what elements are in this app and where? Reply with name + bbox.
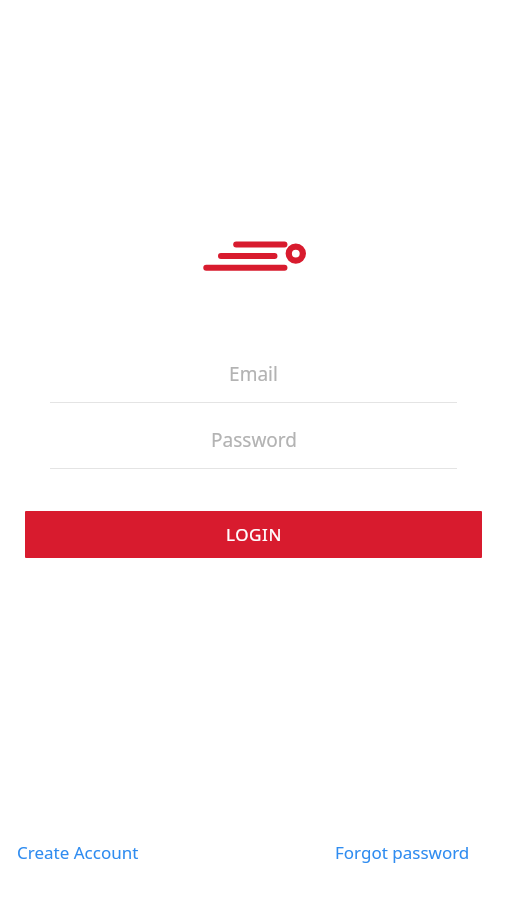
staticText: Email (229, 361, 278, 387)
staticText: Create Account (17, 841, 139, 864)
button[interactable]: Forgot password (332, 835, 473, 870)
button[interactable]: Email (50, 346, 457, 402)
staticText: Password (211, 427, 297, 453)
button[interactable]: LOGIN (25, 511, 482, 558)
button[interactable]: Create Account (14, 835, 142, 870)
staticText: LOGIN (226, 523, 282, 546)
staticText: Forgot password (335, 841, 470, 864)
button[interactable]: Password (50, 412, 457, 468)
